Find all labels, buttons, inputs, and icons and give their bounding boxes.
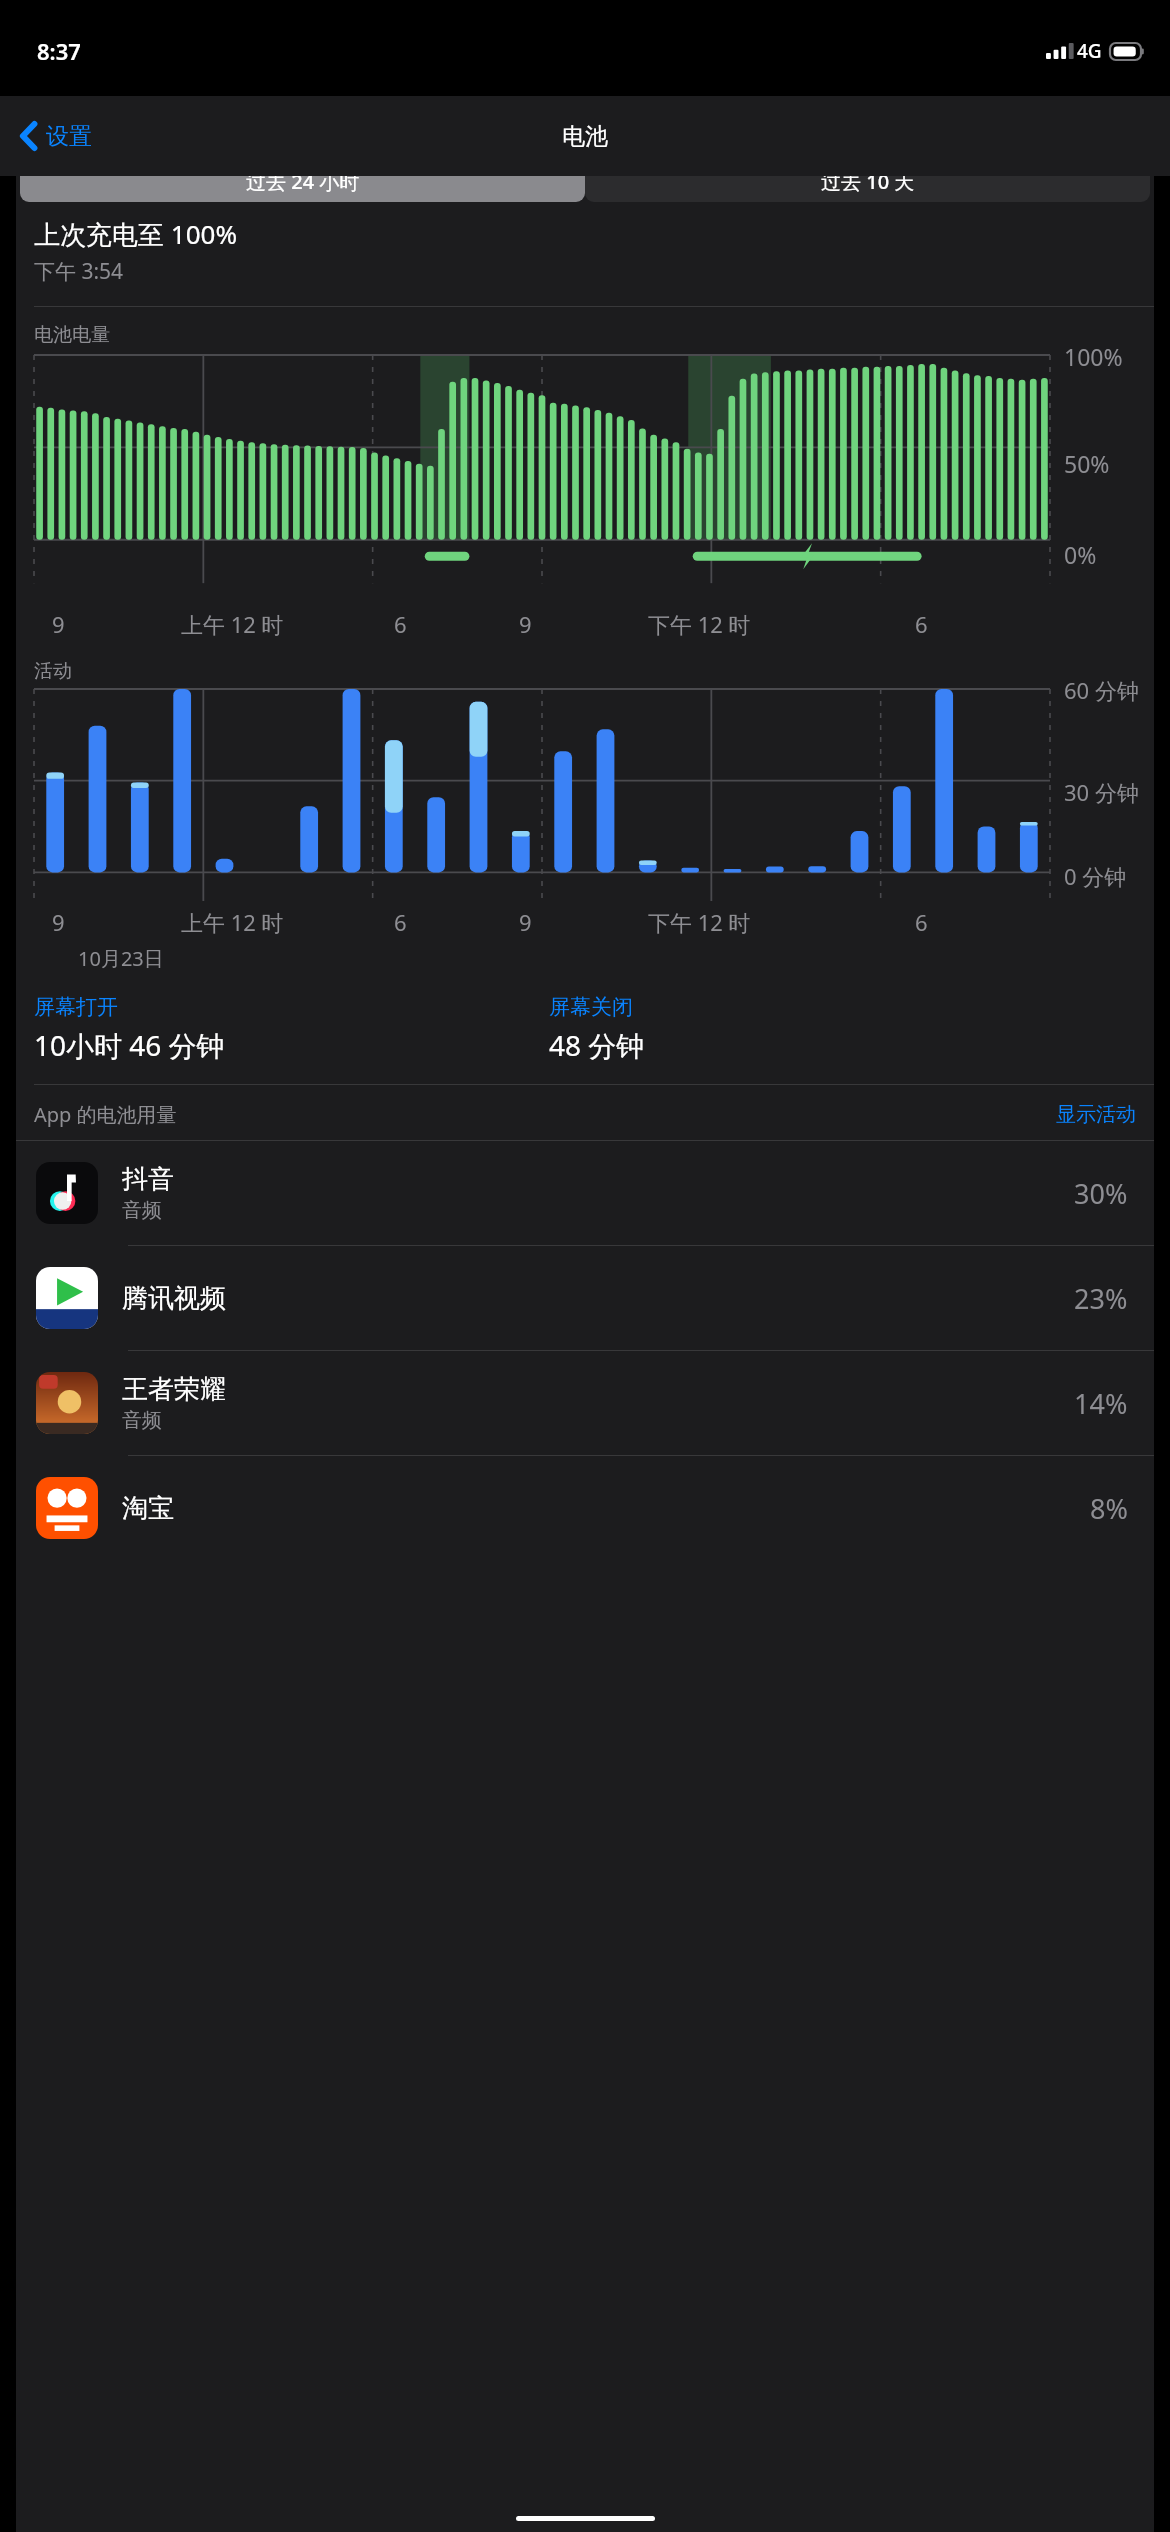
staticText: 9	[519, 609, 532, 639]
staticText: 上次充电至 100%	[34, 216, 237, 252]
button[interactable]: 抖音	[16, 1141, 1154, 1245]
staticText: 6	[915, 907, 928, 937]
button[interactable]: 过去 24 小时	[20, 176, 585, 202]
staticText: 电池	[562, 122, 608, 151]
button[interactable]: 过去 10 天	[585, 176, 1150, 202]
staticText: 8%	[1090, 1490, 1128, 1527]
staticText: 上午 12 时	[181, 907, 284, 937]
staticText: 9	[519, 907, 532, 937]
staticText: 6	[915, 609, 928, 639]
staticText: 14%	[1074, 1385, 1128, 1422]
staticText: 100%	[1064, 341, 1123, 372]
staticText: 50%	[1064, 448, 1110, 479]
staticText: 下午 12 时	[648, 907, 751, 937]
staticText: 6	[394, 907, 407, 937]
staticText: 9	[52, 609, 65, 639]
staticText: 淘宝	[122, 1492, 174, 1525]
staticText: 30 分钟	[1064, 777, 1139, 807]
staticText: 60 分钟	[1064, 675, 1139, 705]
staticText: 显示活动	[1056, 1102, 1136, 1127]
staticText: 音频	[122, 1198, 162, 1223]
staticText: App 的电池用量	[34, 1101, 1056, 1128]
staticText: 下午 12 时	[648, 609, 751, 639]
staticText: 设置	[46, 122, 92, 151]
staticText: 10月23日	[78, 945, 164, 972]
button[interactable]: 王者荣耀	[16, 1351, 1154, 1455]
staticText: 王者荣耀	[122, 1373, 226, 1406]
staticText: 上午 12 时	[181, 609, 284, 639]
staticText: 48 分钟	[549, 1026, 645, 1064]
staticText: 23%	[1074, 1280, 1128, 1317]
staticText: 0 分钟	[1064, 861, 1127, 891]
staticText: 9	[52, 907, 65, 937]
staticText: 过去 10 天	[821, 176, 915, 194]
staticText: 8:37	[37, 36, 81, 66]
staticText: 6	[394, 609, 407, 639]
staticText: 屏幕关闭	[549, 994, 633, 1020]
staticText: 活动	[34, 659, 72, 683]
staticText: 抖音	[122, 1163, 174, 1196]
staticText: 屏幕打开	[34, 994, 118, 1020]
staticText: 腾讯视频	[122, 1282, 226, 1315]
staticText: 10小时 46 分钟	[34, 1026, 225, 1064]
staticText: 0%	[1064, 539, 1097, 570]
button[interactable]: 显示活动	[1056, 1102, 1136, 1127]
staticText: 30%	[1074, 1175, 1128, 1212]
staticText: 电池电量	[34, 323, 110, 347]
staticText: 音频	[122, 1408, 162, 1433]
staticText: 下午 3:54	[34, 257, 124, 286]
staticText: 4G	[1077, 38, 1102, 64]
staticText: 过去 24 小时	[246, 176, 360, 194]
button[interactable]: 设置	[14, 113, 98, 159]
button[interactable]: 淘宝	[16, 1456, 1154, 1560]
button[interactable]: 腾讯视频	[16, 1246, 1154, 1350]
